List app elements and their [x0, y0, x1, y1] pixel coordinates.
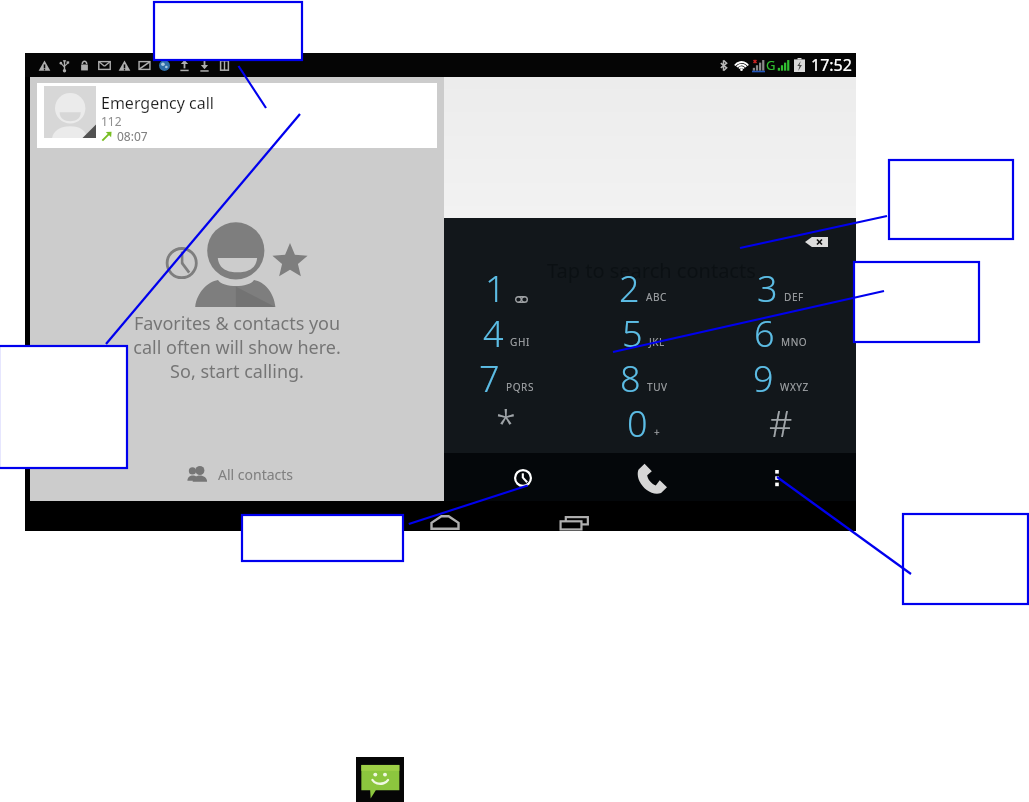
staticText: 8 [620, 354, 641, 399]
button[interactable]: 8 [575, 354, 712, 399]
button[interactable]: 1 [437, 264, 575, 309]
button[interactable]: All contacts [185, 464, 294, 485]
staticText: G [766, 56, 776, 74]
staticText: JKL [649, 335, 665, 349]
staticText: Favorites & contacts you call often will… [77, 311, 397, 383]
staticText: Tap to search contacts [547, 257, 756, 284]
button[interactable]: Emergency call [37, 83, 437, 148]
button[interactable]: Backspace [805, 237, 828, 247]
staticText: + [654, 425, 661, 439]
button[interactable]: 6 [712, 309, 849, 354]
staticText: DEF [784, 290, 804, 304]
staticText: 5 [622, 309, 643, 354]
button[interactable]: More options [767, 465, 787, 491]
button[interactable]: 9 [712, 354, 849, 399]
staticText: 17:52 [811, 54, 852, 76]
staticText: WXYZ [780, 380, 809, 394]
staticText: 6 [754, 309, 775, 354]
staticText: 112 [101, 113, 122, 129]
button[interactable]: Call history [514, 469, 532, 487]
staticText: 2 [619, 264, 640, 309]
button[interactable]: 2 [575, 264, 712, 309]
staticText: MNO [781, 335, 808, 349]
staticText: 1 [485, 264, 506, 309]
button[interactable]: 0 [575, 399, 712, 444]
staticText: PQRS [506, 380, 534, 394]
staticText: GHI [510, 335, 530, 349]
staticText: Emergency call [101, 92, 214, 114]
button[interactable]: * [437, 399, 575, 444]
staticText: 3 [757, 264, 778, 309]
button[interactable]: 5 [575, 309, 712, 354]
staticText: 0 [627, 399, 648, 444]
button[interactable]: 7 [437, 354, 575, 399]
button[interactable]: Recent apps [560, 516, 589, 530]
staticText: 08:07 [117, 128, 148, 144]
button[interactable]: # [712, 399, 849, 444]
staticText: # [769, 399, 793, 444]
button[interactable]: 3 [712, 264, 849, 309]
button[interactable]: 4 [437, 309, 575, 354]
staticText: ABC [646, 290, 668, 304]
button[interactable]: Messaging [356, 757, 404, 802]
staticText: * [496, 399, 516, 444]
staticText: 4 [483, 309, 504, 354]
staticText: TUV [647, 380, 668, 394]
button[interactable]: Call [634, 463, 667, 495]
staticText: All contacts [218, 465, 294, 484]
button[interactable]: Home [430, 515, 460, 530]
staticText: 9 [753, 354, 774, 399]
staticText: 7 [479, 354, 500, 399]
